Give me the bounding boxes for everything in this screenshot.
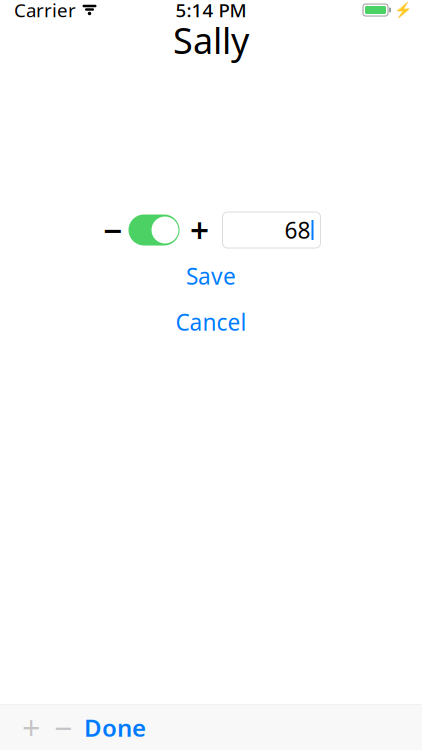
staticText: Cancel — [175, 307, 246, 337]
staticText: 68 — [284, 215, 310, 245]
button[interactable]: Add — [14, 705, 48, 749]
staticText: Done — [84, 712, 146, 743]
button[interactable]: Increase — [187, 212, 211, 248]
staticText: Carrier — [14, 0, 76, 22]
staticText: 5:14 PM — [175, 0, 246, 22]
staticText: ⚡ — [394, 2, 412, 18]
button[interactable]: Done — [84, 705, 146, 749]
staticText: + — [190, 208, 209, 252]
staticText: + — [22, 706, 40, 749]
button[interactable]: Toggle — [128, 214, 179, 245]
button[interactable]: Cancel — [151, 310, 271, 334]
button[interactable]: Value — [222, 212, 320, 248]
button[interactable]: Decrease — [101, 212, 123, 248]
staticText: Save — [186, 261, 236, 291]
staticText: Sally — [173, 16, 249, 64]
staticText: − — [54, 706, 72, 749]
staticText: − — [103, 208, 122, 252]
button[interactable]: Save — [151, 264, 271, 288]
button[interactable]: Remove — [48, 705, 78, 749]
